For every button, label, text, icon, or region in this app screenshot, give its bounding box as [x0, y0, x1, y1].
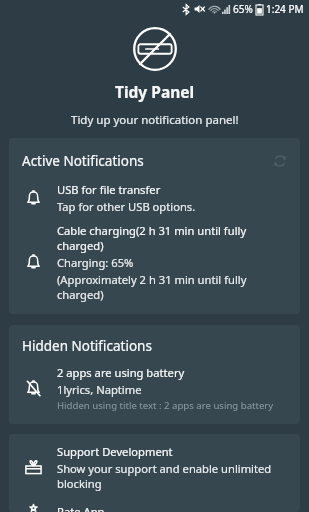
staticText: Cable charging(2 h 31 min until fully ch…: [57, 223, 292, 253]
staticText: Show your support and enable unlimited b…: [57, 461, 292, 491]
staticText: Active Notifications: [22, 152, 144, 170]
button[interactable]: USB for file transfer: [9, 182, 300, 214]
staticText: Tidy Panel: [115, 81, 195, 102]
staticText: 1:24 PM: [266, 2, 304, 16]
staticText: Hidden Notifications: [22, 337, 152, 355]
button[interactable]: Cable charging(2 h 31 min until fully ch…: [9, 223, 300, 302]
staticText: (Approximately 2 h 31 min until fully ch…: [57, 272, 292, 302]
staticText: Tidy up your notification panel!: [71, 112, 239, 128]
staticText: 1lyrics, Naptime: [57, 382, 142, 397]
staticText: Rate App: [57, 504, 105, 512]
button[interactable]: 2 apps are using battery: [9, 365, 300, 412]
button[interactable]: Refresh notifications: [269, 150, 291, 172]
button[interactable]: Support Development: [9, 444, 300, 491]
staticText: Hidden using title text : 2 apps are usi…: [57, 399, 274, 412]
staticText: USB for file transfer: [57, 182, 161, 197]
staticText: Charging: 65%: [57, 255, 134, 270]
button[interactable]: Rate App: [9, 504, 300, 512]
staticText: 2 apps are using battery: [57, 365, 185, 380]
staticText: Tap for other USB options.: [57, 199, 196, 214]
staticText: 65%: [233, 2, 253, 16]
staticText: Support Development: [57, 444, 173, 459]
